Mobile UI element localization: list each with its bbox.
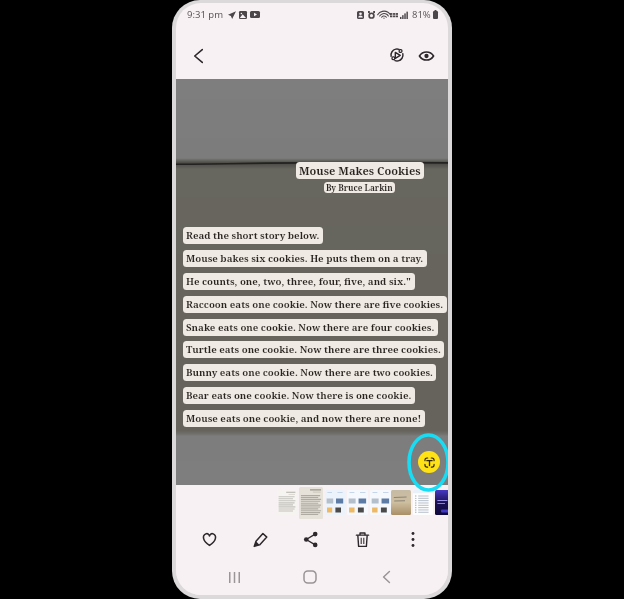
button[interactable]: Raccoon eats one cookie. Now there are f… [183,296,447,313]
button[interactable]: Bunny eats one cookie. Now there are two… [183,364,436,381]
button[interactable]: Read the short story below. [183,227,323,244]
button[interactable]: Edit [238,521,282,558]
button[interactable] [435,490,448,515]
button[interactable]: Bear eats one cookie. Now there is one c… [183,387,415,404]
staticText: 9:31 pm [187,8,224,21]
button[interactable]: Snake eats one cookie. Now there are fou… [183,319,438,336]
button[interactable]: Back [180,38,216,74]
button[interactable] [299,487,323,519]
staticText: Read the short story below. [186,229,320,242]
button[interactable]: Delete [340,521,384,558]
button[interactable]: Mouse eats one cookie, and now there are… [183,410,425,427]
staticText: Mouse eats one cookie, and now there are… [186,412,422,425]
staticText: Raccoon eats one cookie. Now there are f… [186,298,444,311]
button[interactable]: Image details [408,38,444,74]
button[interactable] [391,490,411,515]
button[interactable]: Home [285,560,335,594]
staticText: 81% [412,8,431,21]
button[interactable]: Back [361,560,411,594]
button[interactable]: More options [391,521,435,558]
button[interactable] [370,490,391,515]
button[interactable]: Mouse Makes Cookies [296,162,424,179]
button[interactable]: Recents [209,560,259,594]
staticText: He counts, one, two, three, four, five, … [186,275,412,288]
button[interactable]: By Bruce Larkin [324,182,395,193]
button[interactable]: Extract text [418,451,440,473]
button[interactable] [413,490,433,515]
staticText: Bear eats one cookie. Now there is one c… [186,389,412,402]
button[interactable]: Turtle eats one cookie. Now there are th… [183,341,444,358]
button[interactable] [325,490,345,515]
button[interactable]: Motion photo [379,37,415,73]
button[interactable] [347,490,368,515]
staticText: By Bruce Larkin [326,182,393,193]
staticText: Mouse bakes six cookies. He puts them on… [186,252,424,265]
staticText: Snake eats one cookie. Now there are fou… [186,321,435,334]
button[interactable]: Share [289,521,333,558]
staticText: Turtle eats one cookie. Now there are th… [186,343,441,356]
staticText: Mouse Makes Cookies [299,163,421,178]
button[interactable]: Mouse bakes six cookies. He puts them on… [183,250,427,267]
button[interactable]: He counts, one, two, three, four, five, … [183,273,415,290]
button[interactable]: Favorite [187,521,231,558]
button[interactable] [277,490,297,515]
staticText: Bunny eats one cookie. Now there are two… [186,366,433,379]
